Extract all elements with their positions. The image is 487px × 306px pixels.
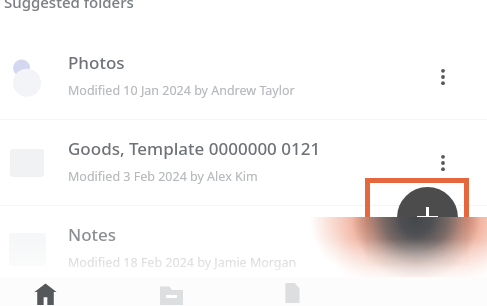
button[interactable]: Notes [0, 206, 487, 291]
staticText: Modified 3 Feb 2024 by Alex Kim [68, 168, 258, 185]
button[interactable]: Home [15, 277, 75, 306]
button[interactable]: Home [15, 277, 75, 306]
button[interactable]: More options [425, 145, 461, 181]
staticText: Goods, Template 0000000 0121 [68, 137, 321, 160]
button[interactable]: Files [262, 277, 322, 306]
button[interactable]: Goods, Template 0000000 0121 [0, 120, 487, 205]
button[interactable]: Photos [0, 34, 487, 119]
button[interactable]: Files [262, 277, 322, 306]
staticText: Suggested folders [4, 0, 134, 12]
button[interactable]: More options [425, 231, 461, 267]
button[interactable]: Create new [397, 187, 458, 248]
staticText: Notes [68, 223, 117, 246]
staticText: Photos [68, 51, 125, 74]
button[interactable]: More options [425, 59, 461, 95]
button[interactable]: Shared [141, 277, 201, 306]
staticText: Modified 10 Jan 2024 by Andrew Taylor [68, 82, 295, 99]
staticText: Modified 18 Feb 2024 by Jamie Morgan [68, 254, 297, 271]
button[interactable]: Shared [141, 277, 201, 306]
